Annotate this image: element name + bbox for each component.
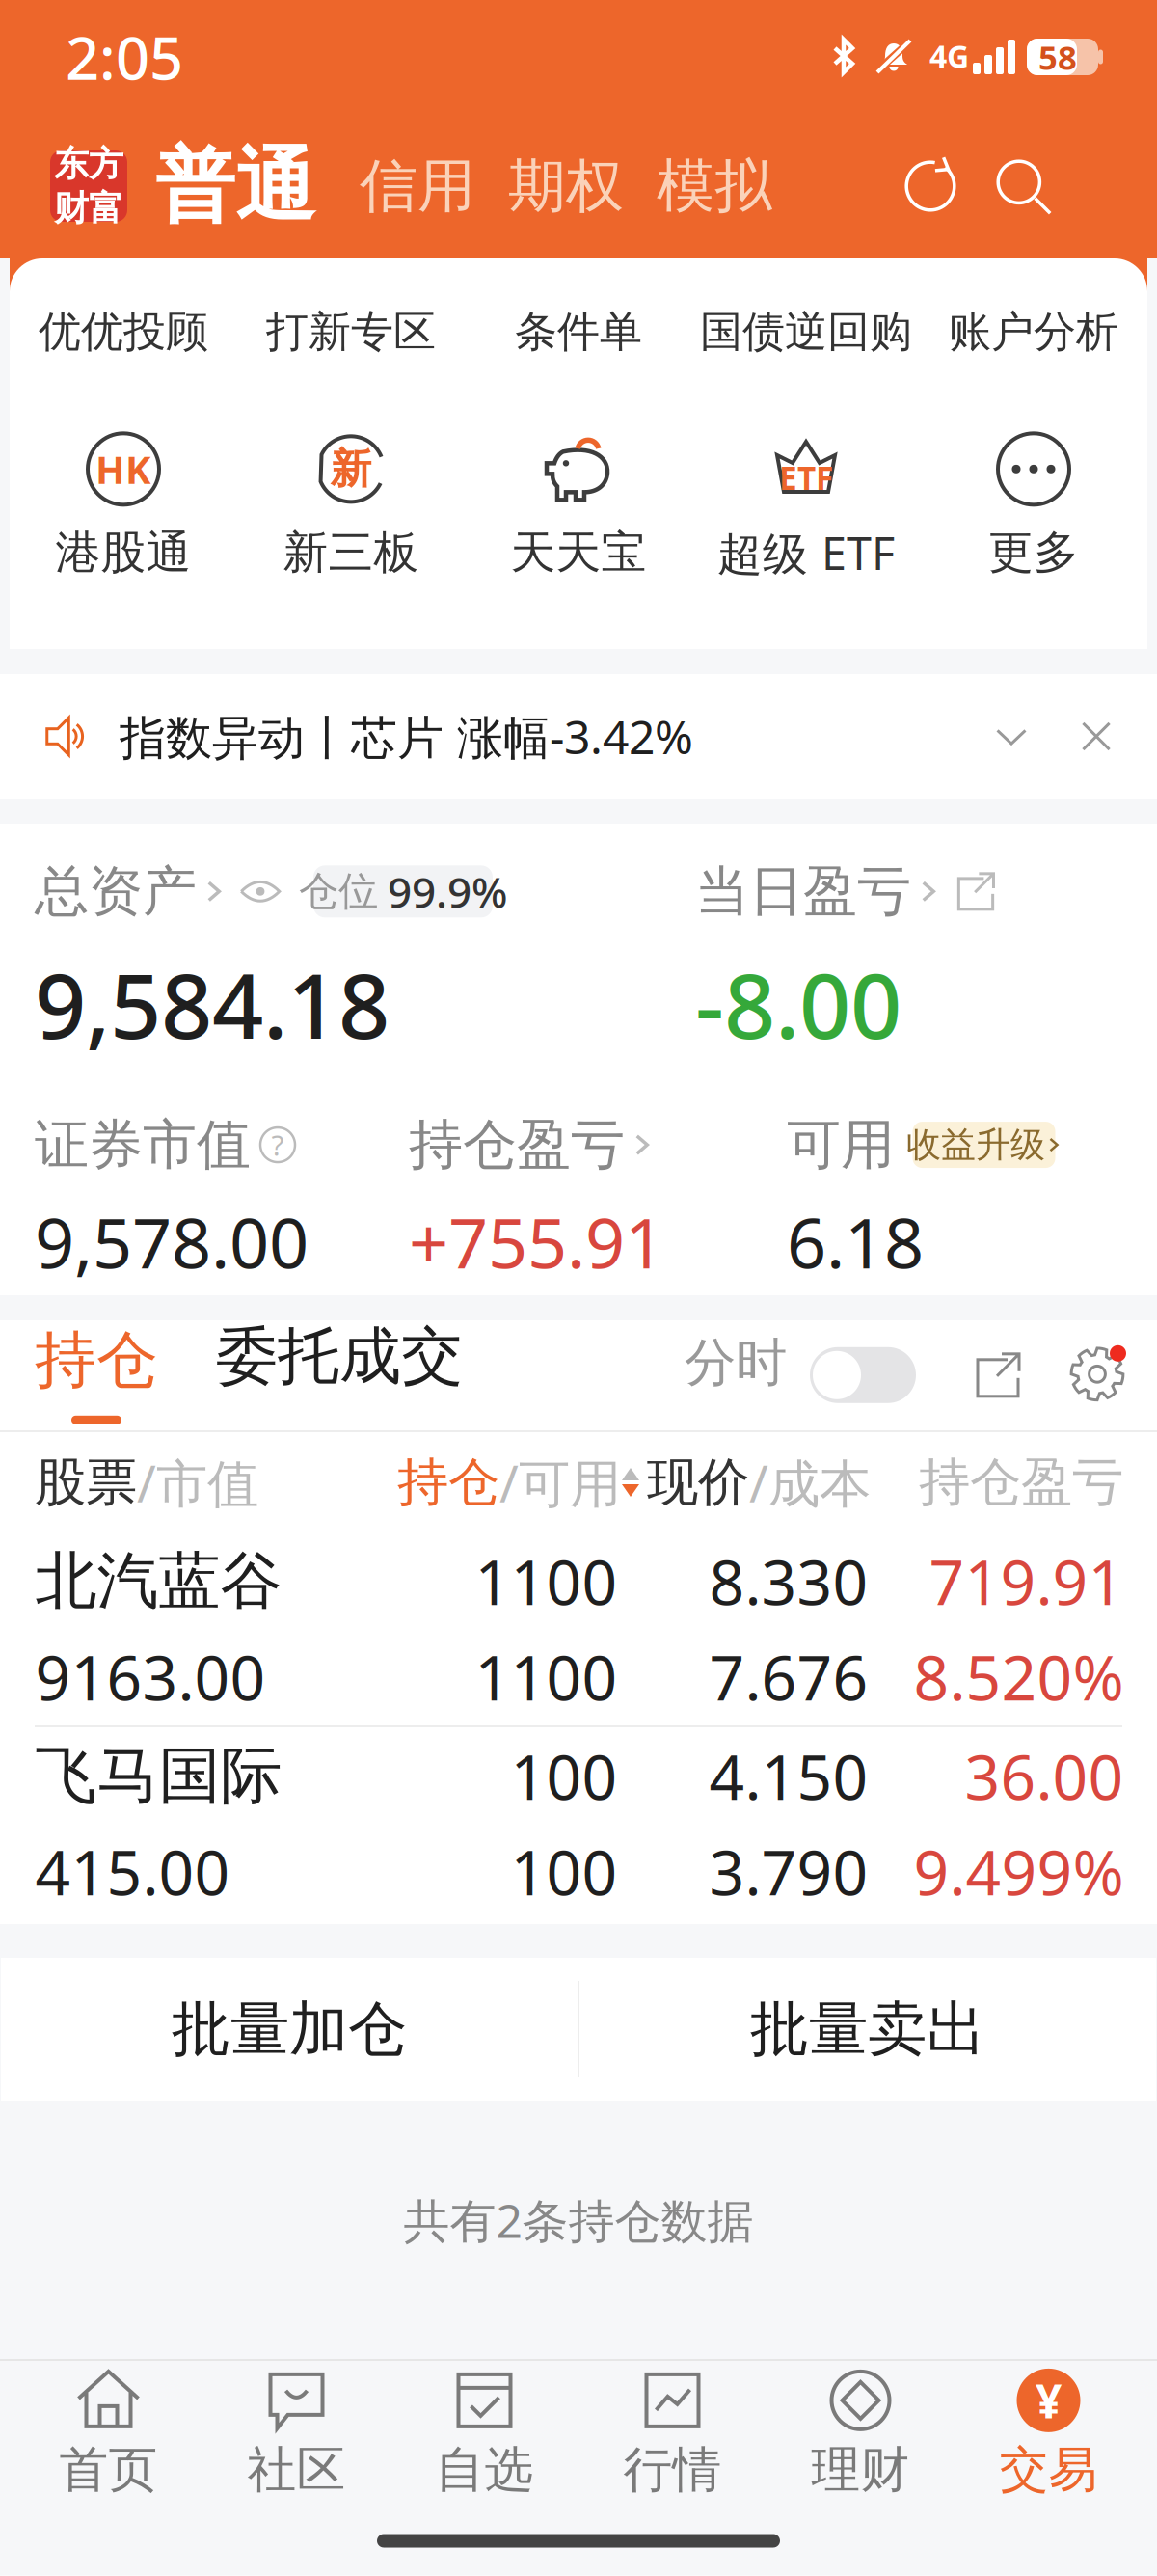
staticText: 9.499% <box>914 1830 1124 1912</box>
staticText: 持仓盈亏 <box>919 1451 1123 1514</box>
staticText: 委托成交 <box>216 1319 463 1394</box>
staticText: 持仓 <box>35 1322 158 1398</box>
staticText: 信用 <box>360 151 475 222</box>
staticText: 超级 ETF <box>717 523 895 583</box>
staticText: /成本 <box>749 1448 871 1516</box>
staticText: 优优投顾 <box>39 306 208 358</box>
button[interactable]: 社区 <box>202 2361 390 2506</box>
staticText: 更多 <box>988 525 1079 580</box>
button[interactable]: Search <box>977 133 1069 239</box>
staticText: 可用 <box>787 1112 895 1178</box>
staticText: 北汽蓝谷 <box>35 1543 282 1619</box>
button[interactable]: 打新专区 <box>237 303 465 361</box>
button[interactable]: 批量卖出 <box>579 1958 1156 2101</box>
staticText: 415.00 <box>35 1830 230 1912</box>
staticText: 持仓盈亏 <box>409 1112 625 1178</box>
button[interactable]: HK <box>10 419 237 592</box>
staticText: 行情 <box>623 2440 722 2500</box>
staticText: ? <box>271 1126 284 1164</box>
staticText: 打新专区 <box>266 306 436 358</box>
staticText: 普通 <box>155 137 315 235</box>
staticText: 99.9% <box>388 863 507 920</box>
staticText: 9,578.00 <box>35 1195 309 1288</box>
button[interactable]: 信用 <box>343 133 492 239</box>
button[interactable]: 持仓 <box>35 1322 158 1398</box>
staticText: 100 <box>511 1735 618 1817</box>
button[interactable]: 天天宝 <box>465 419 692 592</box>
button[interactable]: Refresh <box>884 133 977 239</box>
staticText: 6.18 <box>787 1195 924 1288</box>
staticText: 3.790 <box>709 1830 868 1912</box>
button[interactable]: 期权 <box>492 133 640 239</box>
button[interactable]: 更多 <box>920 419 1147 592</box>
button[interactable]: 行情 <box>578 2361 767 2506</box>
staticText: 交易 <box>999 2440 1098 2500</box>
staticText: 1100 <box>475 1540 618 1622</box>
staticText: 证券市值 <box>35 1112 251 1178</box>
staticText: 9163.00 <box>35 1636 266 1718</box>
staticText: +755.91 <box>409 1195 664 1288</box>
button[interactable]: 账户分析 <box>920 303 1147 361</box>
staticText: 100 <box>511 1830 618 1912</box>
staticText: ETF <box>779 456 833 499</box>
button[interactable]: 普通 <box>127 133 343 239</box>
button[interactable]: 飞马国际 <box>0 1727 1157 1920</box>
staticText: 港股通 <box>55 525 191 580</box>
button[interactable]: 优优投顾 <box>10 303 237 361</box>
staticText: 飞马国际 <box>35 1738 282 1814</box>
staticText: 4G <box>929 35 969 76</box>
button[interactable]: 批量加仓 <box>1 1958 578 2101</box>
staticText: 批量加仓 <box>172 1993 407 2065</box>
staticText: 账户分析 <box>949 306 1118 358</box>
staticText: 仓位 <box>299 867 378 916</box>
button[interactable]: Share <box>916 1351 1022 1428</box>
button[interactable]: 模拟 <box>640 133 789 239</box>
staticText: 719.91 <box>929 1540 1124 1622</box>
staticText: ¥ <box>1036 2370 1062 2431</box>
staticText: 收益升级 <box>906 1123 1045 1166</box>
staticText: 2:05 <box>66 18 183 96</box>
staticText: 新 <box>330 444 372 494</box>
staticText: 1100 <box>475 1636 618 1718</box>
staticText: 现价 <box>647 1451 749 1514</box>
button[interactable]: 理财 <box>767 2361 955 2506</box>
staticText: 期权 <box>508 151 624 222</box>
staticText: 理财 <box>811 2440 910 2500</box>
staticText: 股票 <box>35 1451 137 1514</box>
staticText: -8.00 <box>695 944 901 1063</box>
staticText: /可用 <box>499 1448 621 1516</box>
staticText: 36.00 <box>965 1735 1124 1817</box>
staticText: 共有2条持仓数据 <box>404 2189 753 2251</box>
staticText: 58 <box>1038 35 1077 79</box>
button[interactable]: ¥ <box>955 2361 1143 2506</box>
button[interactable]: 委托成交 <box>158 1319 463 1428</box>
staticText: 当日盈亏 <box>695 858 911 925</box>
staticText: 分时 <box>685 1331 787 1394</box>
staticText: 财富 <box>54 187 123 230</box>
staticText: 8.520% <box>914 1636 1124 1718</box>
staticText: 东方 <box>54 143 123 185</box>
staticText: 指数异动丨芯片 涨幅-3.42% <box>120 706 693 767</box>
button[interactable]: Collapse <box>993 718 1030 755</box>
button[interactable]: 北汽蓝谷 <box>0 1532 1157 1725</box>
staticText: 4.150 <box>709 1735 868 1817</box>
staticText: 总资产 <box>35 858 197 925</box>
staticText: /市值 <box>137 1448 258 1516</box>
staticText: 条件单 <box>515 306 642 358</box>
button[interactable]: 首页 <box>14 2361 202 2506</box>
staticText: 天天宝 <box>511 525 646 580</box>
button[interactable]: 自选 <box>390 2361 578 2506</box>
staticText: 首页 <box>59 2440 158 2500</box>
button[interactable]: 条件单 <box>465 303 692 361</box>
staticText: 国债逆回购 <box>700 306 912 358</box>
button[interactable]: Toggle time view <box>787 1347 916 1428</box>
button[interactable]: 新 <box>237 419 465 592</box>
staticText: HK <box>95 443 151 495</box>
button[interactable]: 国债逆回购 <box>692 303 920 361</box>
button[interactable]: ETF <box>692 419 920 592</box>
staticText: 社区 <box>247 2440 346 2500</box>
button[interactable]: Close <box>1030 720 1113 753</box>
staticText: 批量卖出 <box>750 1993 985 2065</box>
button[interactable]: Settings <box>1022 1345 1126 1428</box>
staticText: 新三板 <box>283 525 419 580</box>
